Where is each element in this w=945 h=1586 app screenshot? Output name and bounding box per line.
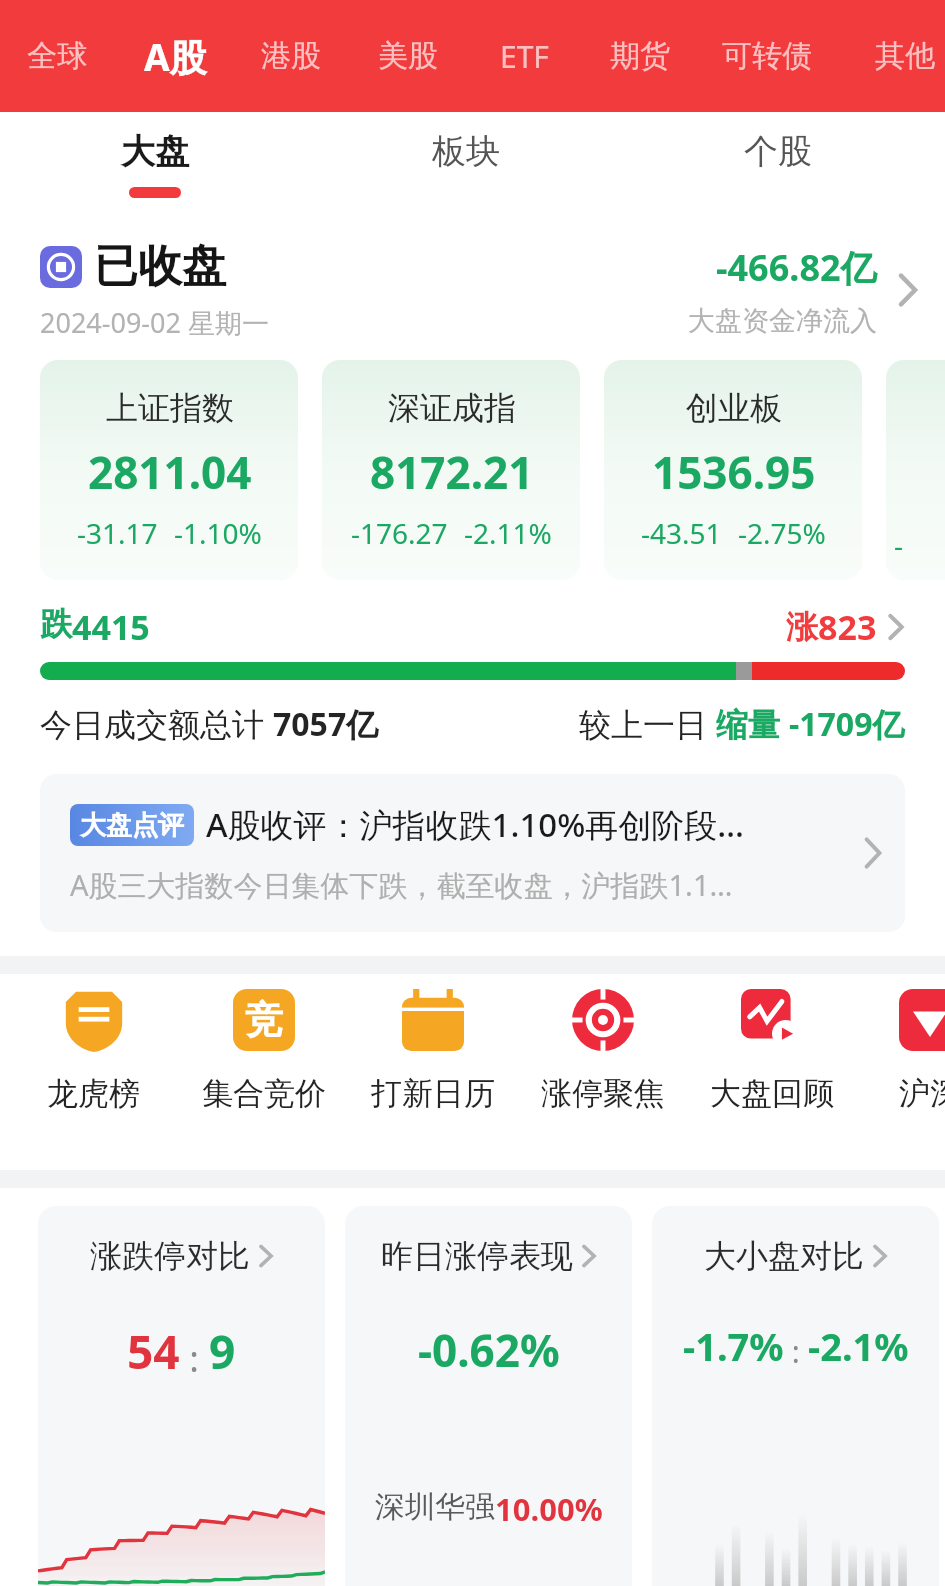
- staticText: 大盘回顾: [710, 1074, 834, 1113]
- staticText: 大盘: [121, 130, 189, 173]
- button[interactable]: 全球: [7, 0, 107, 112]
- staticText: 10.00%: [495, 1488, 603, 1530]
- staticText: 大小盘对比: [704, 1236, 864, 1276]
- button[interactable]: 已收盘: [0, 220, 945, 360]
- staticText: -: [894, 526, 904, 564]
- button[interactable]: 涨停聚焦: [518, 986, 688, 1156]
- staticText: 8172.21: [370, 442, 534, 502]
- button[interactable]: 打新日历: [348, 986, 518, 1156]
- staticText: 大盘资金净流入: [688, 304, 877, 338]
- staticText: 个股: [744, 130, 812, 173]
- button[interactable]: 竞: [179, 986, 349, 1156]
- button[interactable]: 大盘点评: [40, 774, 905, 932]
- staticText: 深证成指: [388, 388, 516, 428]
- staticText: :: [784, 1331, 808, 1372]
- staticText: 期货: [610, 37, 670, 75]
- button[interactable]: 龙虎榜: [8, 986, 178, 1156]
- staticText: 1536.95: [652, 442, 816, 502]
- button[interactable]: 上证指数: [40, 360, 298, 580]
- button[interactable]: 港股: [241, 0, 341, 112]
- staticText: 2811.04: [88, 442, 252, 502]
- staticText: 7057亿: [273, 702, 379, 746]
- button[interactable]: 期货: [590, 0, 690, 112]
- staticText: 9: [209, 1320, 236, 1383]
- button[interactable]: 跌: [40, 604, 905, 650]
- button[interactable]: 个股: [668, 112, 888, 220]
- staticText: 深圳华强: [375, 1488, 495, 1526]
- staticText: 昨日涨停表现: [381, 1236, 573, 1276]
- staticText: 4415: [72, 604, 150, 650]
- staticText: 54: [127, 1320, 180, 1383]
- staticText: 美股: [378, 37, 438, 75]
- staticText: 集合竞价: [202, 1074, 326, 1113]
- staticText: 涨: [786, 607, 818, 647]
- button[interactable]: 大小盘对比: [652, 1206, 939, 1586]
- button[interactable]: 可转债: [702, 0, 832, 112]
- button[interactable]: 板块: [356, 112, 576, 220]
- button[interactable]: 昨日涨停表现: [345, 1206, 632, 1586]
- staticText: 缩量: [716, 702, 789, 746]
- staticText: 上证指数: [106, 388, 234, 428]
- staticText: -2.75%: [738, 514, 826, 552]
- staticText: 港股: [261, 37, 321, 75]
- button[interactable]: 大盘: [45, 112, 265, 220]
- staticText: 沪深: [899, 1074, 945, 1113]
- staticText: 涨停聚焦: [541, 1074, 665, 1113]
- staticText: 创业板: [686, 388, 782, 428]
- staticText: -31.17: [77, 514, 158, 552]
- staticText: -43.51: [641, 514, 722, 552]
- staticText: A股: [144, 31, 207, 82]
- staticText: -0.62%: [418, 1320, 560, 1380]
- staticText: 跌: [40, 604, 72, 644]
- button[interactable]: 美股: [358, 0, 458, 112]
- staticText: -466.82亿: [716, 243, 877, 292]
- button[interactable]: ETF: [474, 0, 574, 112]
- staticText: -1709亿: [789, 702, 905, 746]
- staticText: 可转债: [722, 37, 812, 75]
- staticText: ETF: [500, 36, 549, 77]
- button[interactable]: 沪深: [845, 986, 945, 1156]
- button[interactable]: 其他: [850, 0, 945, 112]
- button[interactable]: 涨跌停对比: [38, 1206, 325, 1586]
- staticText: -1.7%: [683, 1320, 784, 1372]
- staticText: :: [180, 1334, 209, 1383]
- staticText: -176.27: [351, 514, 448, 552]
- button[interactable]: -: [886, 360, 945, 580]
- staticText: -2.1%: [808, 1320, 909, 1372]
- staticText: 龙虎榜: [47, 1074, 140, 1113]
- staticText: 全球: [27, 37, 87, 75]
- staticText: 其他: [875, 37, 935, 75]
- staticText: 大盘点评: [80, 809, 184, 842]
- staticText: A股收评：沪指收跌1.10%再创阶段…: [206, 802, 745, 847]
- button[interactable]: A股: [120, 0, 230, 112]
- staticText: -2.11%: [464, 514, 552, 552]
- staticText: A股三大指数今日集体下跌，截至收盘，沪指跌1.1…: [70, 865, 733, 905]
- button[interactable]: 深证成指: [322, 360, 580, 580]
- staticText: 今日成交额总计: [40, 702, 273, 746]
- button[interactable]: 创业板: [604, 360, 862, 580]
- staticText: 已收盘: [94, 239, 226, 294]
- staticText: 板块: [432, 130, 500, 173]
- staticText: 823: [818, 604, 877, 650]
- staticText: -1.10%: [174, 514, 262, 552]
- staticText: 涨跌停对比: [90, 1236, 250, 1276]
- staticText: 打新日历: [371, 1074, 495, 1113]
- button[interactable]: 大盘回顾: [687, 986, 857, 1156]
- staticText: 竞: [245, 996, 283, 1044]
- staticText: 2024-09-02 星期一: [40, 304, 269, 341]
- staticText: 较上一日: [579, 702, 716, 746]
